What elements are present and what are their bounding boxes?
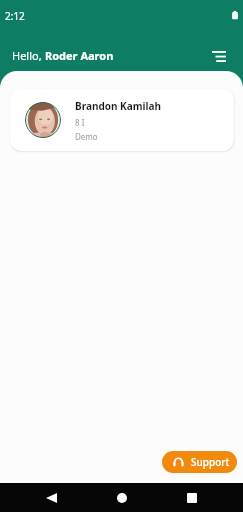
staticText: 2:12 — [5, 9, 25, 23]
button[interactable]: Back — [39, 486, 63, 510]
button[interactable]: Recents — [180, 486, 204, 510]
staticText: Roder Aaron — [45, 48, 114, 63]
staticText: Support — [191, 455, 230, 469]
button[interactable]: Menu — [206, 43, 232, 69]
staticText: Brandon Kamilah — [75, 99, 161, 113]
button[interactable]: Brandon Kamilah — [10, 89, 234, 151]
button[interactable]: Home — [110, 486, 134, 510]
staticText: 8 I — [75, 117, 85, 128]
staticText: Demo — [75, 131, 98, 142]
button[interactable]: Support — [162, 451, 237, 473]
staticText: Hello, — [12, 48, 45, 63]
